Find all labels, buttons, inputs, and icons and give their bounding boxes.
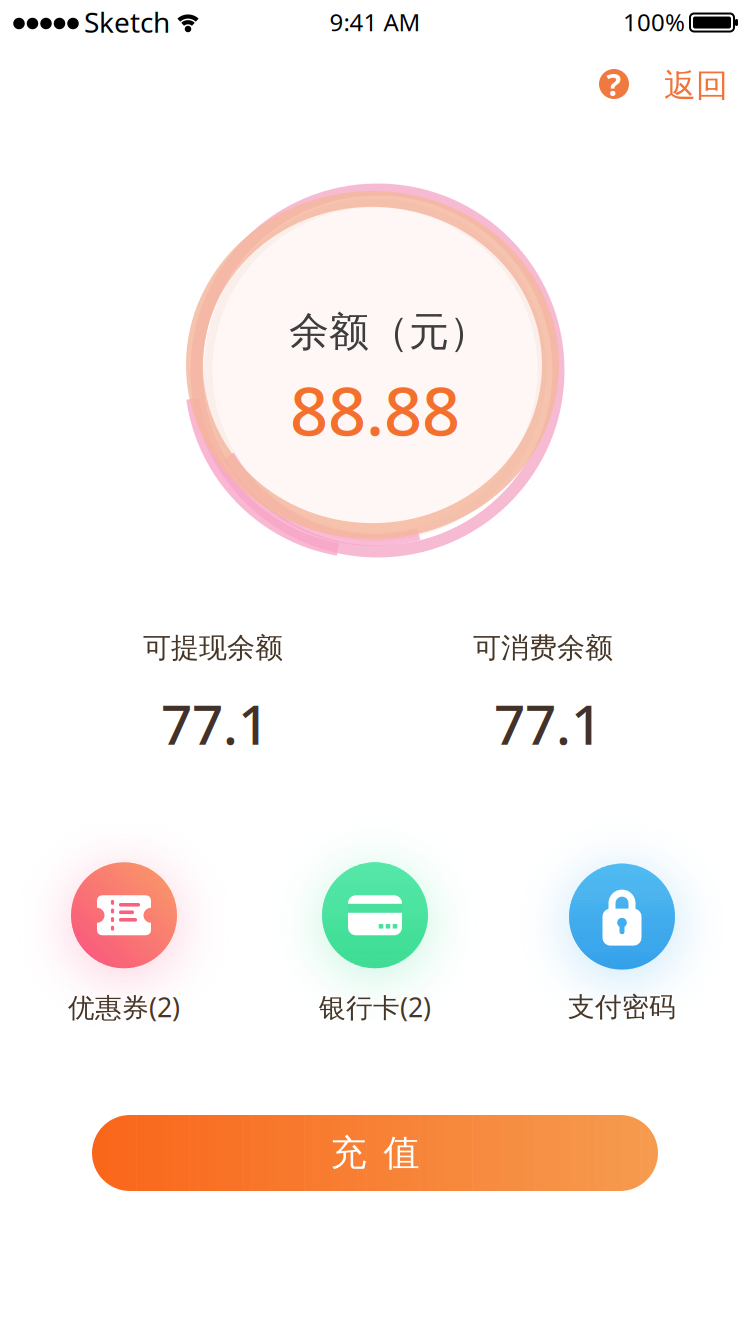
button[interactable]: 充 值 [92, 1115, 658, 1191]
staticText: 77.1 [494, 687, 602, 760]
staticText: 9:41 AM [329, 6, 420, 38]
button[interactable]: 支付密码 [568, 864, 676, 1023]
staticText: 银行卡(2) [319, 989, 431, 1025]
staticText: 100% [623, 6, 685, 38]
staticText: 充 值 [330, 1131, 419, 1175]
staticText: 返回 [664, 66, 728, 105]
staticText: 可消费余额 [473, 631, 613, 665]
button[interactable]: Help [594, 64, 634, 104]
staticText: 余额（元） [289, 307, 489, 356]
staticText: ? [606, 64, 621, 104]
staticText: 优惠券(2) [68, 989, 180, 1025]
staticText: 支付密码 [568, 991, 676, 1023]
staticText: 88.88 [290, 366, 460, 454]
button[interactable]: 优惠券(2) [68, 862, 180, 1025]
staticText: 可提现余额 [143, 631, 283, 665]
staticText: Sketch [84, 3, 170, 41]
staticText: 77.1 [161, 687, 269, 760]
button[interactable]: 银行卡(2) [319, 862, 431, 1025]
button[interactable]: 返回 [656, 58, 736, 113]
